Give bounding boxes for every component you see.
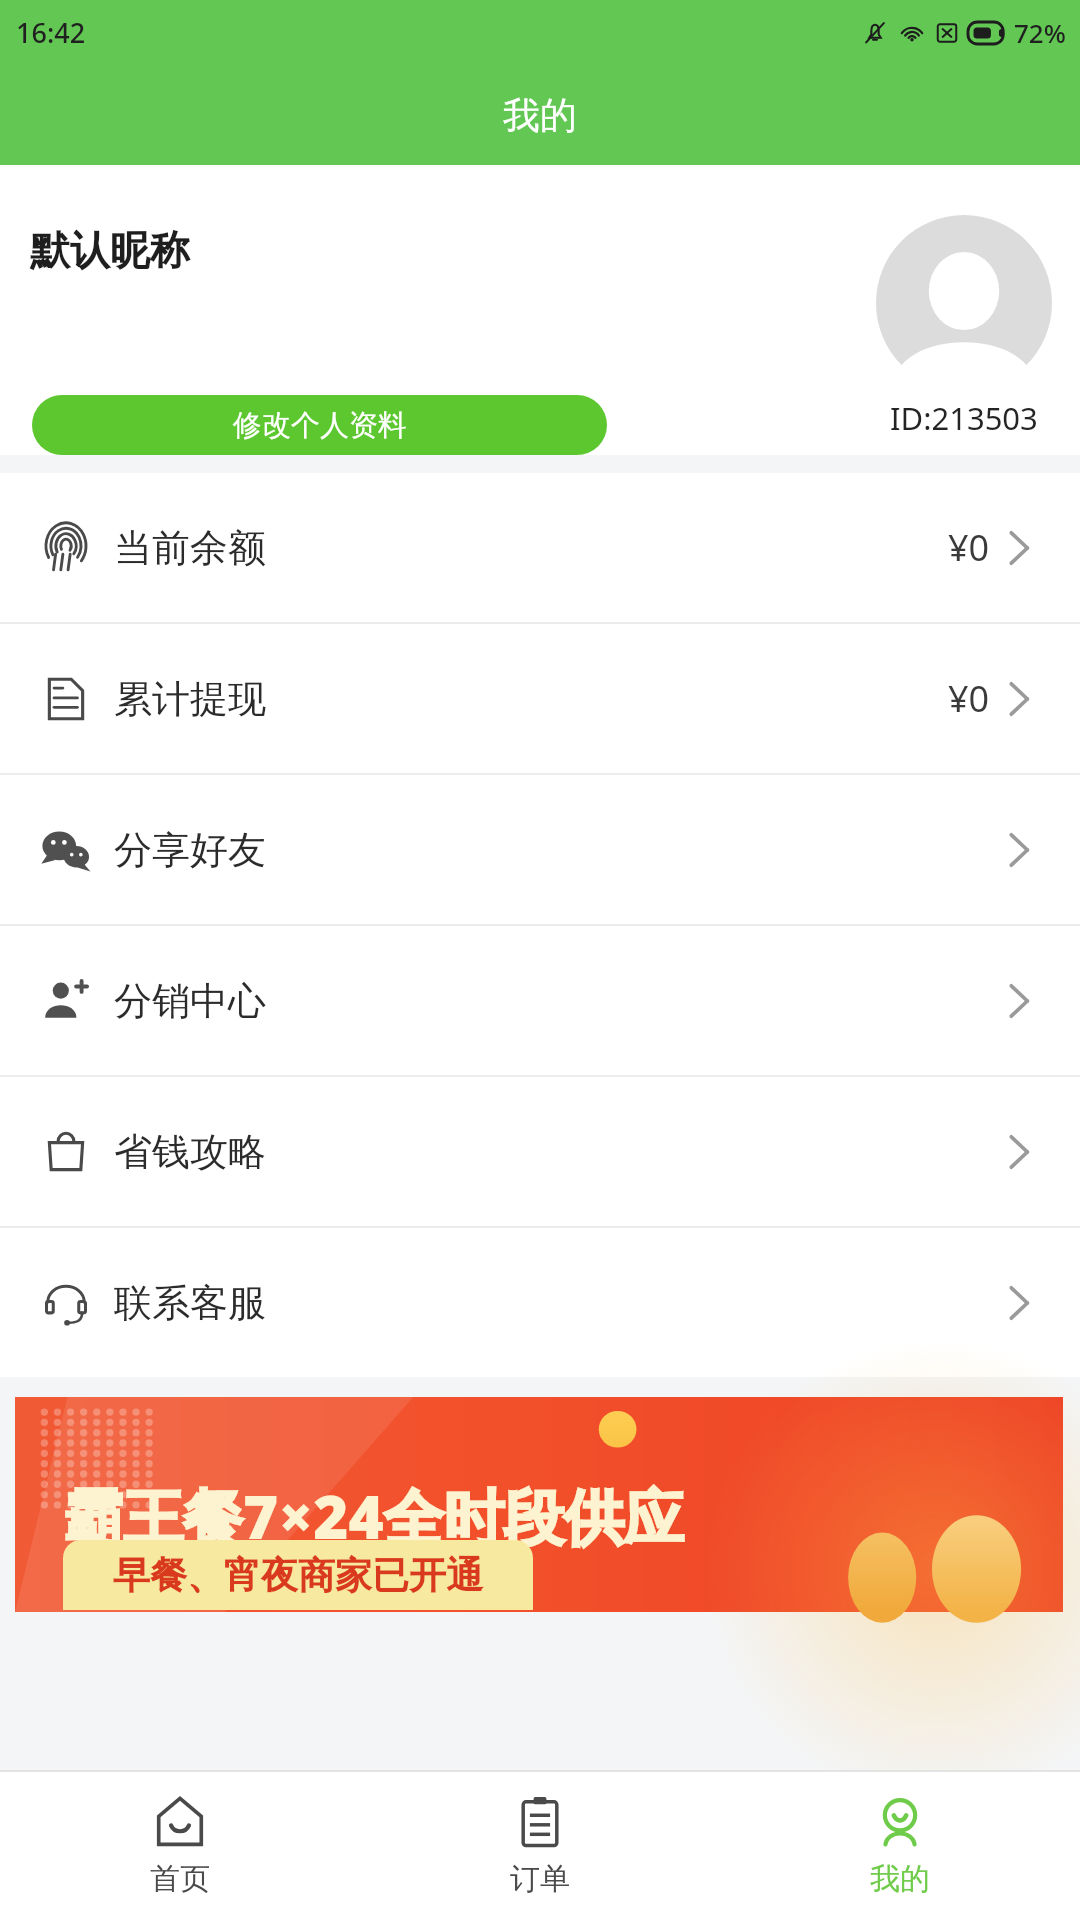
staticText: 修改个人资料: [233, 407, 407, 444]
button[interactable]: 首页: [0, 1772, 360, 1920]
button[interactable]: 修改个人资料: [32, 395, 607, 455]
staticText: 默认昵称: [30, 225, 190, 275]
button[interactable]: 省钱攻略: [0, 1077, 1080, 1226]
staticText: ¥0: [948, 674, 990, 723]
staticText: ID:213503: [890, 397, 1038, 439]
staticText: 首页: [150, 1860, 210, 1898]
button[interactable]: 累计提现: [0, 624, 1080, 773]
staticText: 省钱攻略: [114, 1128, 266, 1176]
button[interactable]: Avatar: [876, 215, 1052, 439]
button[interactable]: 我的: [720, 1772, 1080, 1920]
staticText: 累计提现: [114, 675, 266, 723]
button[interactable]: 订单: [360, 1772, 720, 1920]
staticText: 我的: [870, 1860, 930, 1898]
staticText: 当前余额: [114, 524, 266, 572]
staticText: 联系客服: [114, 1279, 266, 1327]
staticText: 霸王餐7×24全时段供应: [63, 1475, 684, 1557]
staticText: 分销中心: [114, 977, 266, 1025]
button[interactable]: Promotion banner: [15, 1397, 1063, 1612]
staticText: 16:42: [16, 14, 86, 51]
button[interactable]: 分销中心: [0, 926, 1080, 1075]
button[interactable]: 当前余额: [0, 473, 1080, 622]
button[interactable]: 分享好友: [0, 775, 1080, 924]
staticText: 我的: [503, 92, 577, 139]
button[interactable]: 联系客服: [0, 1228, 1080, 1377]
staticText: 早餐、宵夜商家已开通: [113, 1552, 483, 1599]
staticText: 分享好友: [114, 826, 266, 874]
staticText: ¥0: [948, 523, 990, 572]
staticText: 72%: [1014, 15, 1066, 50]
staticText: 订单: [510, 1860, 570, 1898]
